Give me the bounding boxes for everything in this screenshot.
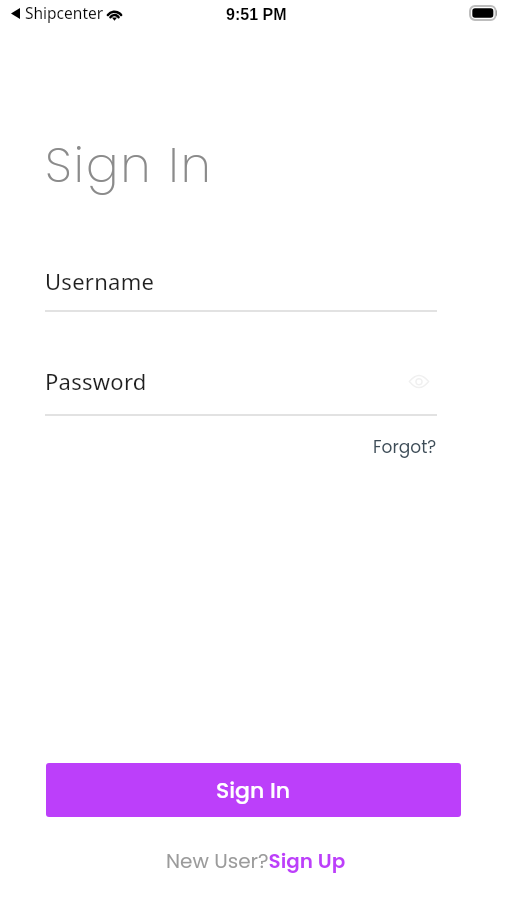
button[interactable]: Forgot? — [366, 431, 444, 463]
staticText: Password — [45, 366, 147, 396]
button[interactable]: Sign In — [46, 763, 461, 817]
staticText: 9:51 PM — [226, 6, 287, 24]
staticText: Sign In — [216, 775, 291, 806]
button[interactable]: New User?Sign Up — [160, 844, 352, 878]
button[interactable]: Password — [45, 358, 437, 416]
button[interactable]: Show password — [402, 368, 436, 394]
staticText: New User?Sign Up — [166, 847, 346, 875]
button[interactable]: Username — [45, 258, 437, 312]
staticText: Shipcenter — [25, 2, 104, 23]
staticText: Forgot? — [373, 435, 437, 459]
staticText: Sign In — [45, 132, 213, 199]
staticText: Username — [45, 266, 155, 296]
